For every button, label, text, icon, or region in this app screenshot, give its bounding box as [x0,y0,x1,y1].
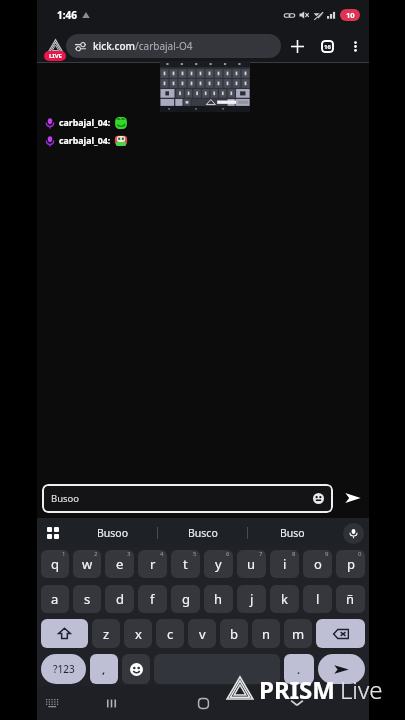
button[interactable]: Shift [41,619,88,648]
staticText: d [116,590,124,608]
button[interactable]: Space [154,654,280,684]
staticText: /carbajal-O4 [135,39,193,53]
button[interactable]: u [237,550,266,578]
button[interactable]: z [92,619,120,648]
button[interactable]: New tab [284,33,310,59]
staticText: h [214,590,223,608]
staticText: l [316,590,320,608]
button[interactable]: Voice input [337,518,369,548]
staticText: ?123 [53,662,75,676]
staticText: LIVE [49,52,62,60]
staticText: 9 [325,550,329,558]
button[interactable]: Clipboard [37,518,69,548]
button[interactable]: Collapse keyboard [285,686,309,720]
staticText: Busoo [97,526,129,540]
button[interactable]: p [336,550,365,578]
button[interactable]: q [41,550,69,578]
staticText: 1 [62,550,66,558]
button[interactable]: , [90,654,118,684]
staticText: kick.com [93,39,135,53]
staticText: 4 [160,550,164,558]
button[interactable]: Home [191,686,215,720]
button[interactable]: i [270,550,299,578]
button[interactable]: Tabs [314,33,340,59]
button[interactable]: a [41,585,69,613]
button[interactable]: Switch keyboard [40,686,64,720]
staticText: i [283,555,287,573]
staticText: 10 [346,10,355,20]
button[interactable]: y [204,550,233,578]
staticText: v [199,625,206,643]
button[interactable]: c [156,619,184,648]
staticText: Buso [280,526,305,540]
staticText: e [116,555,124,573]
staticText: p [347,555,355,573]
button[interactable]: e [105,550,134,578]
staticText: b [230,625,238,643]
button[interactable]: Send message [337,481,369,515]
staticText: q [51,555,59,573]
staticText: ñ [346,590,355,608]
button[interactable]: Emoji [122,654,150,684]
staticText: n [262,625,271,643]
button[interactable]: t [171,550,200,578]
button[interactable]: Busoo [42,484,333,513]
staticText: PRISM [259,673,335,706]
staticText: , [102,662,106,677]
staticText: 2 [94,550,98,558]
button[interactable]: h [204,585,233,613]
staticText: 3 [127,550,131,558]
staticText: 6 [226,550,230,558]
staticText: 5 [193,550,197,558]
button[interactable]: Buso [248,518,337,548]
staticText: 7 [259,550,263,558]
button[interactable]: ñ [336,585,365,613]
button[interactable]: x [124,619,152,648]
button[interactable]: Send [318,654,365,684]
staticText: r [150,555,156,573]
staticText: a [51,590,59,608]
button[interactable]: Busco [158,518,247,548]
button[interactable]: Busoo [69,518,157,548]
staticText: Live [340,673,383,706]
button[interactable]: n [252,619,280,648]
button[interactable]: . [284,654,314,684]
button[interactable]: w [73,550,101,578]
button[interactable]: s [73,585,101,613]
button[interactable]: f [138,585,167,613]
staticText: 8 [292,550,296,558]
button[interactable]: Recent apps [99,686,123,720]
staticText: . [297,662,301,677]
button[interactable]: k [270,585,299,613]
button[interactable]: v [188,619,216,648]
button[interactable]: d [105,585,134,613]
staticText: carbajal_04: [59,135,111,147]
staticText: 0 [358,550,362,558]
staticText: u [247,555,256,573]
staticText: carbajal_04: [59,117,111,129]
staticText: w [82,555,93,573]
button[interactable]: m [284,619,312,648]
button[interactable]: kick.com [66,34,281,58]
button[interactable]: l [303,585,332,613]
staticText: z [103,625,110,643]
button[interactable]: ?123 [41,654,86,684]
staticText: Busco [188,526,218,540]
staticText: m [292,625,305,643]
button[interactable]: b [220,619,248,648]
button[interactable]: r [138,550,167,578]
button[interactable]: j [237,585,266,613]
staticText: t [183,555,188,573]
staticText: o [314,555,322,573]
staticText: Busoo [51,492,80,505]
button[interactable]: More options [343,34,367,58]
staticText: x [135,625,142,643]
staticText: 1:46 [57,8,77,22]
button[interactable]: o [303,550,332,578]
button[interactable]: g [171,585,200,613]
staticText: j [250,590,254,608]
staticText: f [150,590,155,608]
button[interactable]: Backspace [316,619,365,648]
staticText: c [167,625,174,643]
staticText: y [215,555,222,573]
